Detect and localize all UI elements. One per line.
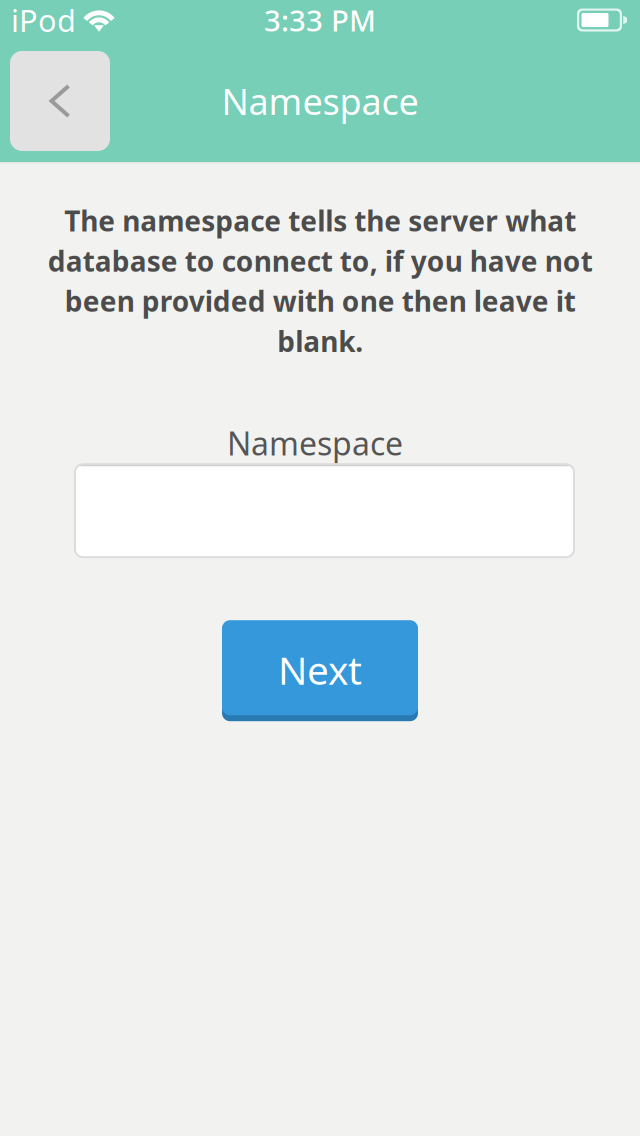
button[interactable]: Next bbox=[222, 622, 418, 721]
button[interactable]: Namespace text field bbox=[75, 464, 574, 557]
button[interactable]: Back bbox=[10, 51, 110, 151]
staticText: Namespace bbox=[221, 77, 418, 125]
staticText: Namespace bbox=[227, 422, 403, 464]
staticText: The namespace tells the server what data… bbox=[47, 202, 592, 360]
staticText: Next bbox=[278, 644, 362, 695]
staticText: 3:33 PM bbox=[264, 0, 376, 39]
staticText: iPod bbox=[11, 0, 76, 40]
